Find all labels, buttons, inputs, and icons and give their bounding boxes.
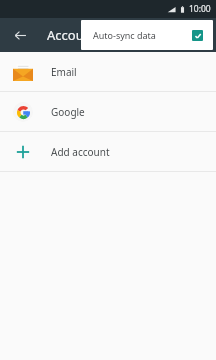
button[interactable]: Google — [0, 92, 216, 131]
button[interactable]: Auto-sync data — [81, 20, 213, 50]
staticText: Accounts — [47, 26, 103, 44]
other: Auto-sync data enabled — [192, 30, 203, 41]
button[interactable]: Back — [7, 22, 33, 48]
staticText: 10:00 — [189, 3, 211, 15]
button[interactable]: Add account — [0, 132, 216, 171]
staticText: Google — [51, 105, 85, 119]
staticText: Email — [51, 65, 77, 79]
staticText: Add account — [51, 145, 110, 159]
button[interactable]: Email — [0, 52, 216, 91]
staticText: Auto-sync data — [93, 29, 156, 41]
